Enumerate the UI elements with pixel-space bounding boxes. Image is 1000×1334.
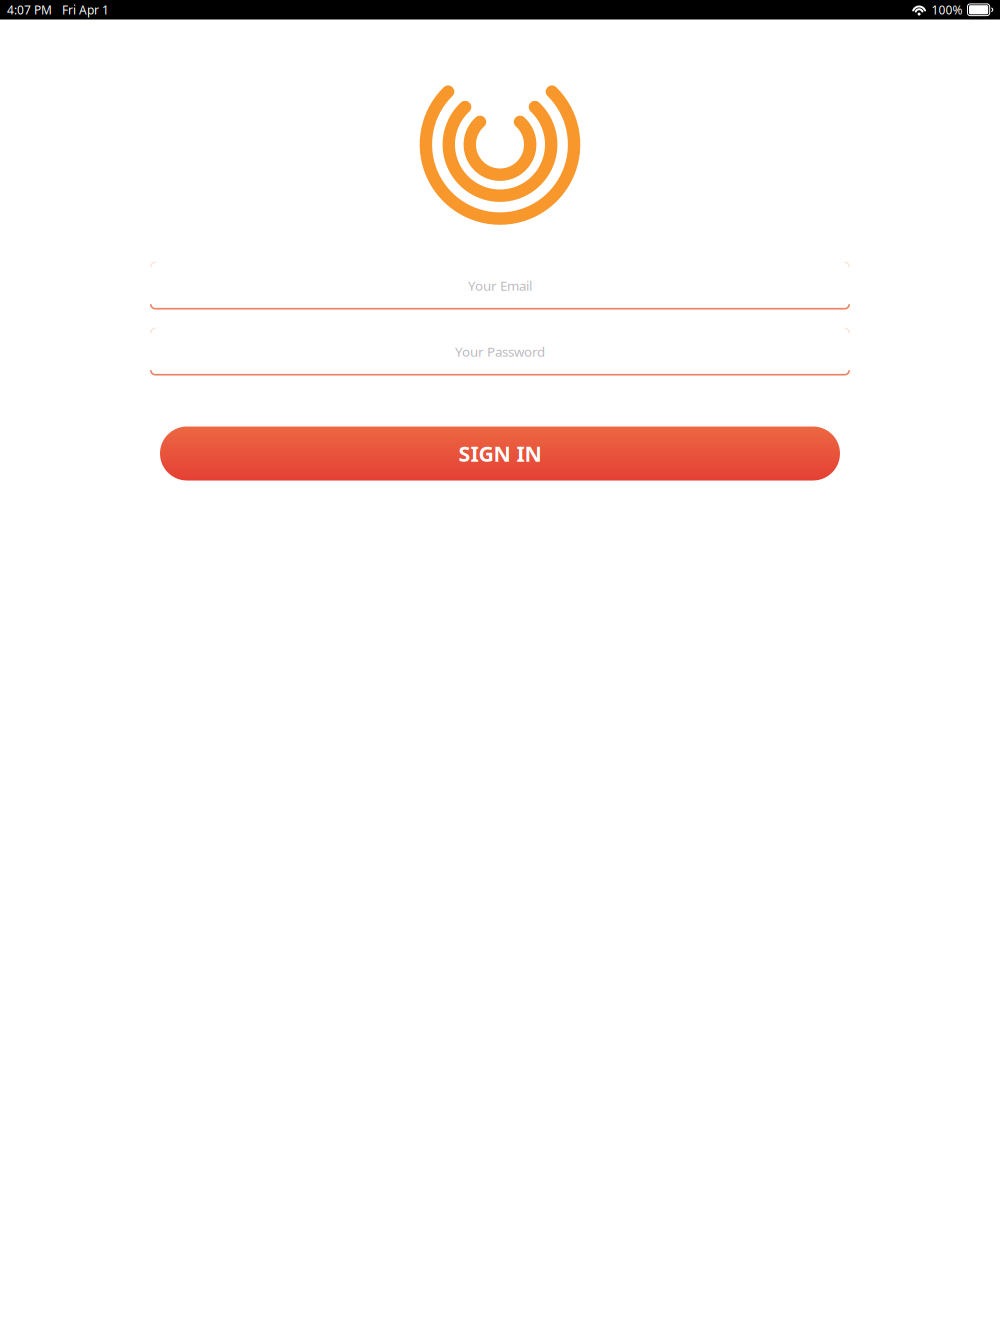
staticText: 4:07 PM (7, 2, 52, 18)
staticText: Your Password (455, 343, 545, 360)
button[interactable]: Your Email (150, 261, 850, 309)
staticText: Your Email (468, 277, 532, 294)
button[interactable]: SIGN IN (160, 426, 840, 480)
button[interactable]: Your Password (150, 327, 850, 375)
staticText: 100% (931, 2, 962, 18)
staticText: Fri Apr 1 (62, 2, 109, 18)
staticText: SIGN IN (458, 439, 541, 468)
